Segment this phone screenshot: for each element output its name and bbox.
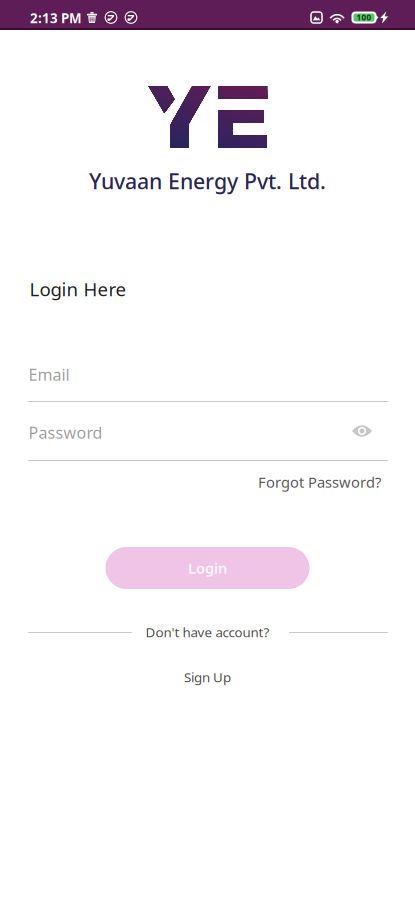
button[interactable]: Forgot Password? — [181, 472, 381, 492]
button[interactable]: Login — [105, 547, 309, 589]
staticText: 100 — [356, 12, 371, 23]
button[interactable]: Sign Up — [0, 668, 415, 686]
staticText: Sign Up — [184, 668, 231, 686]
staticText: Forgot Password? — [258, 472, 381, 492]
staticText: Email — [28, 364, 69, 385]
button[interactable]: Show password — [344, 417, 380, 445]
staticText: Password — [28, 422, 102, 443]
staticText: Yuvaan Energy Pvt. Ltd. — [89, 167, 326, 195]
staticText: Login Here — [29, 277, 126, 301]
staticText: Don't have account? — [145, 623, 269, 641]
staticText: 2:13 PM — [30, 9, 82, 27]
staticText: Login — [188, 558, 227, 578]
